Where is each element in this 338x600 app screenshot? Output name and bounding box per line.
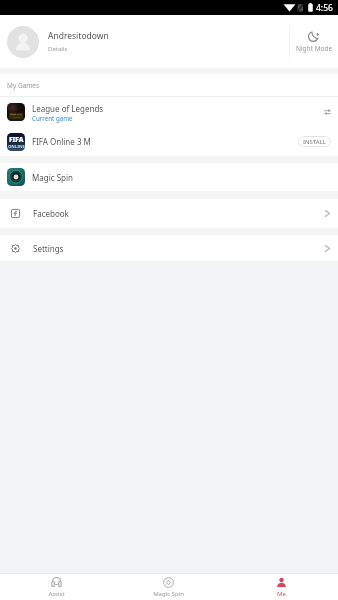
- staticText: FIFA Online 3 M: [32, 136, 91, 147]
- staticText: Me: [277, 590, 286, 598]
- button[interactable]: Settings: [0, 235, 338, 261]
- button[interactable]: Magic Spin: [112, 574, 225, 600]
- button[interactable]: League of Legends: [0, 97, 338, 127]
- staticText: Assist: [48, 590, 65, 598]
- button[interactable]: Facebook: [0, 199, 338, 228]
- button[interactable]: Night Mode: [290, 15, 338, 68]
- staticText: Night Mode: [296, 44, 333, 53]
- staticText: FIFA: [9, 135, 24, 144]
- staticText: League of Legends: [32, 103, 104, 114]
- staticText: INSTALL: [303, 138, 326, 146]
- staticText: Magic Spin: [32, 172, 73, 183]
- staticText: My Games: [7, 81, 40, 90]
- button[interactable]: Assist: [0, 574, 112, 600]
- button[interactable]: Me: [225, 574, 338, 600]
- button[interactable]: Andresitodown: [0, 15, 289, 68]
- staticText: Andresitodown: [48, 30, 109, 42]
- button[interactable]: Switch account: [320, 105, 334, 119]
- button[interactable]: INSTALL: [298, 136, 331, 147]
- staticText: Magic Spin: [153, 590, 184, 598]
- staticText: Facebook: [33, 208, 324, 219]
- staticText: Details: [48, 45, 68, 53]
- staticText: Settings: [33, 243, 324, 254]
- button[interactable]: FIFA: [0, 127, 338, 156]
- staticText: 4:56: [316, 2, 333, 14]
- staticText: Current game: [32, 114, 73, 122]
- staticText: ONLINE: [8, 144, 25, 150]
- button[interactable]: Magic Spin: [0, 163, 338, 191]
